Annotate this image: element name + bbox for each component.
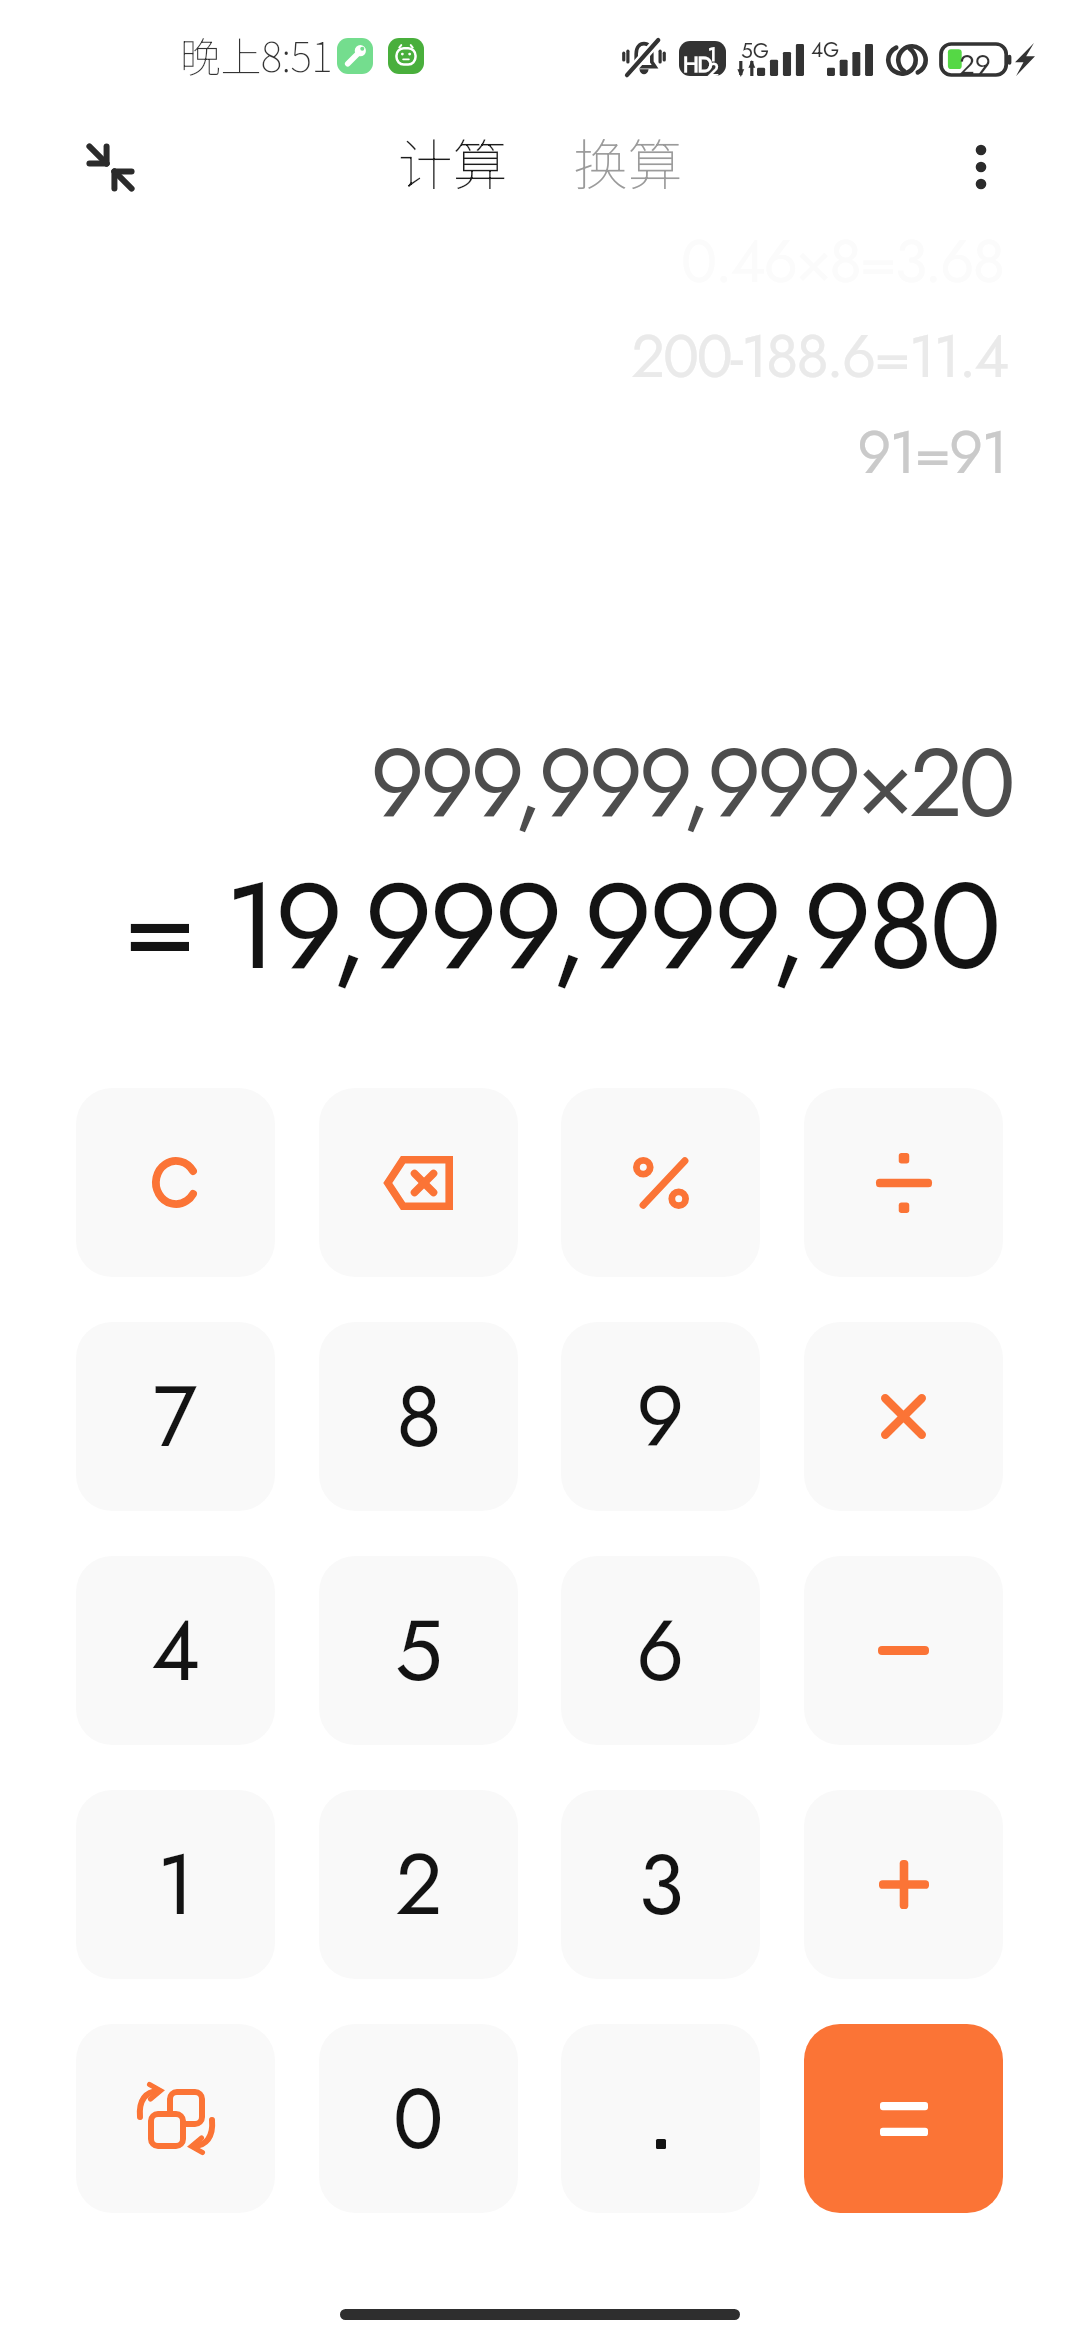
- staticText: 9: [636, 1356, 685, 1477]
- button[interactable]: 换算: [564, 121, 692, 201]
- button[interactable]: Collapse: [62, 119, 158, 215]
- button[interactable]: 3: [561, 1790, 760, 1979]
- staticText: 1: [708, 41, 717, 68]
- button[interactable]: Minus: [804, 1556, 1003, 1745]
- button[interactable]: 4: [76, 1556, 275, 1745]
- button[interactable]: 6: [561, 1556, 760, 1745]
- button[interactable]: 8: [319, 1322, 518, 1511]
- staticText: 4G: [811, 35, 840, 65]
- staticText: 晚上8:51: [180, 24, 332, 83]
- button[interactable]: 9: [561, 1322, 760, 1511]
- button[interactable]: Percent: [561, 1088, 760, 1277]
- button[interactable]: Plus: [804, 1790, 1003, 1979]
- staticText: 200-188.6=11.4: [631, 313, 1007, 400]
- staticText: 0: [393, 2058, 444, 2179]
- button[interactable]: More options: [933, 119, 1029, 215]
- staticText: 2: [395, 1824, 443, 1945]
- button[interactable]: Clear: [76, 1088, 275, 1277]
- button[interactable]: Backspace: [319, 1088, 518, 1277]
- staticText: 999,999,999×20: [370, 714, 1011, 851]
- staticText: 换算: [573, 121, 683, 201]
- button[interactable]: 1: [76, 1790, 275, 1979]
- button[interactable]: Multiply: [804, 1322, 1003, 1511]
- button[interactable]: Convert units: [76, 2024, 275, 2213]
- staticText: = 19,999,999,980: [123, 840, 998, 1013]
- staticText: 29: [959, 44, 991, 75]
- staticText: 5: [395, 1590, 443, 1711]
- button[interactable]: 0: [319, 2024, 518, 2213]
- staticText: 4: [151, 1590, 200, 1711]
- staticText: HD: [683, 48, 712, 76]
- button[interactable]: 计算: [389, 121, 517, 201]
- staticText: 6: [636, 1590, 685, 1711]
- button[interactable]: Equals: [804, 2024, 1003, 2213]
- staticText: 7: [153, 1356, 198, 1477]
- button[interactable]: 5: [319, 1556, 518, 1745]
- button[interactable]: Divide: [804, 1088, 1003, 1277]
- staticText: 91=91: [857, 409, 1007, 496]
- button[interactable]: 2: [319, 1790, 518, 1979]
- staticText: 3: [638, 1824, 684, 1945]
- staticText: 计算: [398, 121, 508, 201]
- staticText: 1: [157, 1824, 195, 1945]
- staticText: 5G: [741, 36, 769, 66]
- button[interactable]: Decimal point: [561, 2024, 760, 2213]
- button[interactable]: 7: [76, 1322, 275, 1511]
- staticText: 2: [708, 56, 719, 76]
- staticText: 8: [396, 1356, 442, 1477]
